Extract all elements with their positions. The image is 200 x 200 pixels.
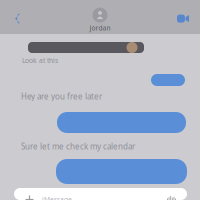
staticText: iMessage bbox=[42, 195, 72, 200]
button[interactable]: FaceTime bbox=[171, 2, 195, 31]
staticText: Hey are you free later bbox=[21, 91, 102, 102]
button[interactable]: Add attachment bbox=[23, 193, 36, 200]
button[interactable]: Record audio bbox=[165, 193, 178, 200]
button[interactable]: Back bbox=[5, 2, 29, 31]
staticText: Look at this bbox=[22, 56, 58, 65]
staticText: Sure let me check my calendar bbox=[21, 141, 135, 152]
staticText: Jordan bbox=[89, 24, 110, 32]
